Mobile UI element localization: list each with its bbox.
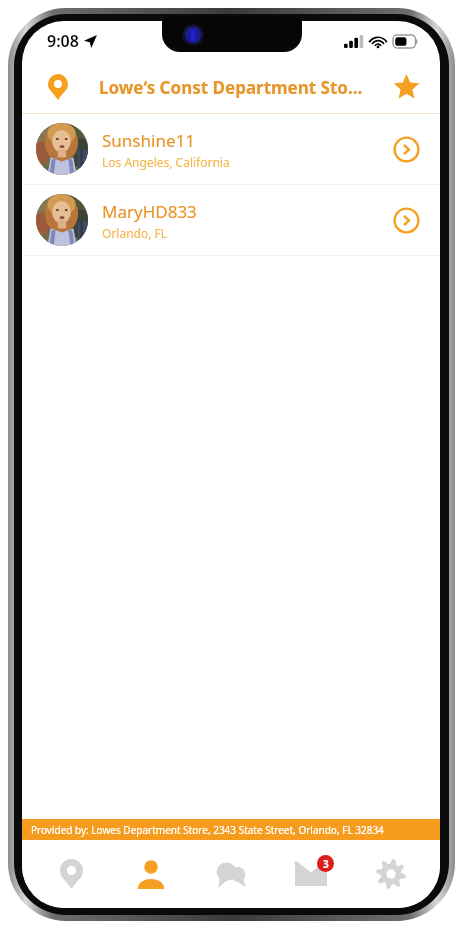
staticText: Orlando, FL <box>102 225 168 241</box>
button[interactable]: Favorite <box>386 67 426 107</box>
button[interactable]: MaryHD833 <box>22 185 440 255</box>
button[interactable]: Chat <box>200 843 262 905</box>
staticText: Lowe‘s Const Department Sto... <box>99 76 363 99</box>
button[interactable]: Messages <box>280 843 342 905</box>
staticText: Provided by: Lowes Department Store, 234… <box>31 823 384 837</box>
staticText: 9:08 <box>47 30 79 52</box>
staticText: Los Angeles, California <box>102 154 230 170</box>
button[interactable]: Open MaryHD833 <box>386 200 426 240</box>
button[interactable]: Profile <box>120 843 182 905</box>
button[interactable]: Places <box>40 843 102 905</box>
staticText: 3 <box>323 857 329 871</box>
staticText: Sunshine11 <box>102 129 195 152</box>
button[interactable]: Settings <box>360 843 422 905</box>
button[interactable]: Open Sunshine11 <box>386 129 426 169</box>
button[interactable]: Sunshine11 <box>22 114 440 184</box>
staticText: MaryHD833 <box>102 200 197 223</box>
button[interactable]: Location <box>38 67 78 107</box>
